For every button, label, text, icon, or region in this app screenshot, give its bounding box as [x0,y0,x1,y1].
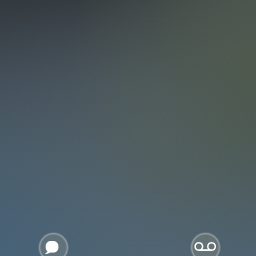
button[interactable]: Messages [39,233,67,256]
button[interactable]: Voicemail [191,233,219,256]
